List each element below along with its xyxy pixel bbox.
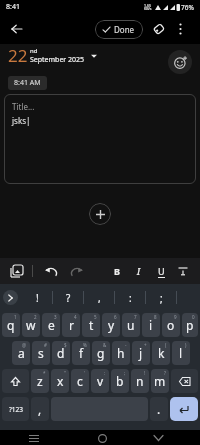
- button[interactable]: [172, 261, 194, 281]
- staticText: h: [117, 345, 125, 361]
- button[interactable]: l: [172, 341, 190, 365]
- staticText: e: [48, 317, 55, 333]
- staticText: B: [114, 265, 120, 277]
- staticText: -: [125, 342, 127, 348]
- button[interactable]: [3, 290, 18, 305]
- button[interactable]: [2, 369, 29, 393]
- button[interactable]: 22: [8, 44, 97, 67]
- staticText: r: [69, 317, 74, 333]
- button[interactable]: U: [150, 261, 172, 281]
- staticText: 9: [174, 314, 177, 320]
- staticText: x: [57, 373, 64, 389]
- staticText: I: [137, 265, 141, 277]
- button[interactable]: b: [111, 369, 129, 393]
- staticText: ,: [38, 401, 42, 417]
- button[interactable]: v: [91, 369, 109, 393]
- button[interactable]: j: [132, 341, 150, 365]
- staticText: f: [79, 345, 84, 361]
- staticText: $: [64, 342, 67, 348]
- staticText: s: [38, 345, 44, 361]
- button[interactable]: [89, 203, 111, 225]
- staticText: ": [64, 370, 66, 376]
- staticText: (: [165, 342, 167, 348]
- button[interactable]: [27, 431, 41, 445]
- button[interactable]: a: [12, 341, 30, 365]
- button[interactable]: .: [150, 397, 168, 421]
- button[interactable]: s: [32, 341, 50, 365]
- button[interactable]: [170, 397, 198, 421]
- button[interactable]: [8, 20, 26, 38]
- button[interactable]: m: [151, 369, 169, 393]
- button[interactable]: 8:41 AM: [8, 76, 47, 90]
- button[interactable]: [67, 261, 87, 281]
- staticText: 8: [154, 314, 157, 320]
- button[interactable]: B: [106, 261, 128, 281]
- button[interactable]: [95, 431, 109, 445]
- button[interactable]: h: [112, 341, 130, 365]
- staticText: 8:41 AM: [14, 78, 41, 88]
- button[interactable]: [168, 50, 192, 74]
- staticText: .: [157, 401, 161, 417]
- button[interactable]: u: [122, 313, 140, 337]
- button[interactable]: y: [102, 313, 120, 337]
- button[interactable]: q: [2, 313, 20, 337]
- staticText: ): [185, 342, 187, 348]
- button[interactable]: r: [62, 313, 80, 337]
- staticText: o: [167, 317, 175, 333]
- button[interactable]: !: [22, 284, 52, 311]
- button[interactable]: z: [31, 369, 49, 393]
- staticText: 1.65 KB/s: [144, 3, 152, 11]
- staticText: 5: [94, 314, 97, 320]
- button[interactable]: n: [131, 369, 149, 393]
- button[interactable]: ;: [146, 284, 176, 311]
- button[interactable]: t: [82, 313, 100, 337]
- button[interactable]: [41, 261, 61, 281]
- button[interactable]: Done: [95, 20, 143, 39]
- button[interactable]: ?: [53, 284, 83, 311]
- button[interactable]: ,: [84, 284, 114, 311]
- staticText: j: [139, 345, 143, 361]
- button[interactable]: [6, 261, 26, 281]
- staticText: 6: [114, 314, 117, 320]
- button[interactable]: [171, 369, 198, 393]
- staticText: 3: [54, 314, 57, 320]
- staticText: ,: [98, 291, 101, 305]
- button[interactable]: [151, 431, 165, 445]
- staticText: m: [154, 373, 166, 389]
- staticText: w: [26, 317, 36, 333]
- button[interactable]: I: [128, 261, 150, 281]
- staticText: !: [144, 370, 146, 376]
- button[interactable]: w: [22, 313, 40, 337]
- staticText: 22: [8, 44, 28, 67]
- button[interactable]: c: [71, 369, 89, 393]
- button[interactable]: k: [152, 341, 170, 365]
- button[interactable]: [172, 21, 188, 37]
- staticText: 1: [14, 314, 17, 320]
- button[interactable]: o: [162, 313, 180, 337]
- staticText: d: [57, 345, 65, 361]
- button[interactable]: x: [51, 369, 69, 393]
- button[interactable]: d: [52, 341, 70, 365]
- staticText: *: [43, 370, 46, 376]
- button[interactable]: ,: [31, 397, 49, 421]
- staticText: ?123: [9, 405, 23, 414]
- staticText: ;: [124, 370, 126, 376]
- button[interactable]: e: [42, 313, 60, 337]
- staticText: %: [83, 342, 87, 348]
- staticText: i: [149, 317, 153, 333]
- staticText: z: [37, 373, 43, 389]
- button[interactable]: ?123: [2, 397, 29, 421]
- button[interactable]: g: [92, 341, 110, 365]
- staticText: p: [186, 317, 194, 333]
- staticText: :: [104, 370, 106, 376]
- button[interactable]: f: [72, 341, 90, 365]
- button[interactable]: p: [182, 313, 198, 337]
- staticText: September 2025: [30, 55, 85, 65]
- button[interactable]: [150, 20, 168, 38]
- button[interactable]: :: [115, 284, 145, 311]
- staticText: 76%: [181, 3, 194, 12]
- button[interactable]: i: [142, 313, 160, 337]
- staticText: 0: [192, 314, 195, 320]
- staticText: !: [36, 291, 39, 305]
